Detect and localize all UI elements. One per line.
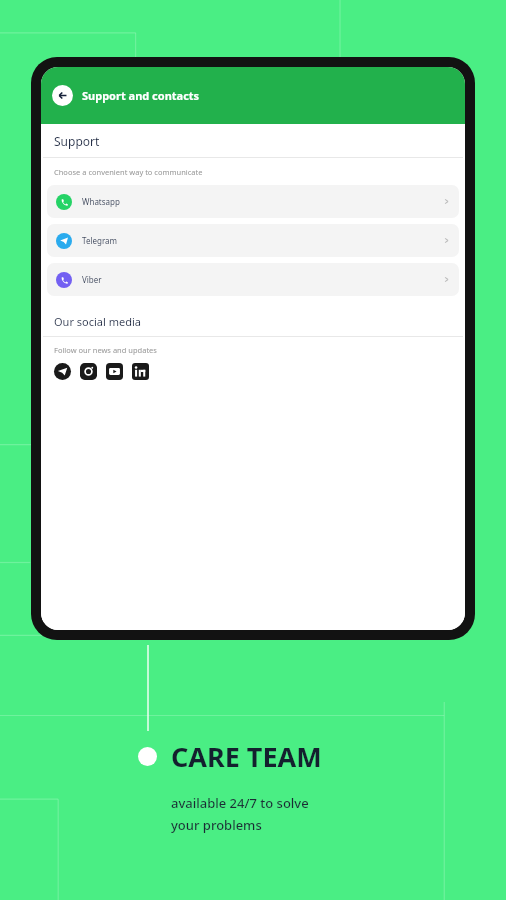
button[interactable]: Telegram xyxy=(54,363,71,380)
button[interactable]: Whatsapp xyxy=(47,185,459,218)
button[interactable]: Viber xyxy=(47,263,459,296)
button[interactable]: LinkedIn xyxy=(132,363,149,380)
staticText: Our social media xyxy=(54,314,141,329)
button[interactable]: Instagram xyxy=(80,363,97,380)
staticText: Support and contacts xyxy=(82,88,200,103)
staticText: Choose a convenient way to communicate xyxy=(54,167,203,177)
staticText: your problems xyxy=(171,816,262,834)
staticText: Telegram xyxy=(82,235,118,246)
button[interactable]: YouTube xyxy=(106,363,123,380)
staticText: Support xyxy=(54,133,100,149)
button[interactable]: Telegram xyxy=(47,224,459,257)
staticText: Whatsapp xyxy=(82,196,120,207)
staticText: Viber xyxy=(82,274,102,285)
staticText: available 24/7 to solve xyxy=(171,794,309,812)
button[interactable]: Back xyxy=(52,85,73,106)
staticText: Follow our news and updates xyxy=(54,345,157,355)
staticText: CARE TEAM xyxy=(171,738,322,775)
